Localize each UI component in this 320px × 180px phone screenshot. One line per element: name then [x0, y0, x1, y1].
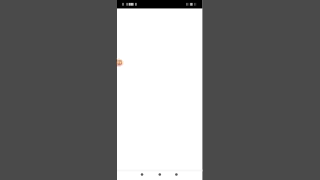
button[interactable]: Back [140, 170, 146, 180]
button[interactable]: Home [158, 170, 164, 180]
button[interactable]: Recent apps [175, 170, 181, 180]
